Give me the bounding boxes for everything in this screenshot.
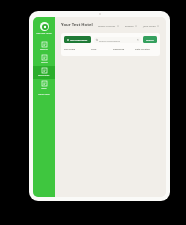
staticText: × xyxy=(137,38,139,42)
staticText: Download xyxy=(113,48,125,51)
button[interactable]: Select Account xyxy=(97,23,120,28)
staticText: Your Test Hotel xyxy=(61,22,93,28)
button[interactable]: File Name xyxy=(64,48,157,51)
button[interactable]: English xyxy=(124,23,138,28)
button[interactable]: Logo xyxy=(40,22,49,31)
staticText: English xyxy=(125,24,134,27)
staticText: Admin Label xyxy=(38,93,50,96)
button[interactable]: Reports xyxy=(33,40,55,53)
staticText: File Name xyxy=(64,48,76,51)
button[interactable]: Users xyxy=(33,79,55,92)
staticText: Guests xyxy=(41,61,48,64)
staticText: John Smith xyxy=(143,24,156,27)
staticText: Your Test Hotel xyxy=(36,32,52,35)
staticText: Select Account xyxy=(98,24,116,27)
button[interactable]: Documents xyxy=(33,66,55,79)
staticText: Reports xyxy=(40,48,48,51)
button[interactable]: Guests xyxy=(33,53,55,66)
button[interactable]: Add Document xyxy=(64,36,91,43)
staticText: Date Created xyxy=(135,48,150,51)
staticText: Users xyxy=(41,87,47,90)
button[interactable]: Search Documents xyxy=(94,37,141,43)
staticText: Search Documents xyxy=(99,39,121,42)
staticText: Type xyxy=(91,48,97,51)
button[interactable]: John Smith xyxy=(142,23,160,28)
staticText: Search xyxy=(146,38,154,41)
button[interactable]: Search xyxy=(143,36,157,43)
staticText: Documents xyxy=(38,74,50,77)
staticText: Add Document xyxy=(70,38,88,41)
